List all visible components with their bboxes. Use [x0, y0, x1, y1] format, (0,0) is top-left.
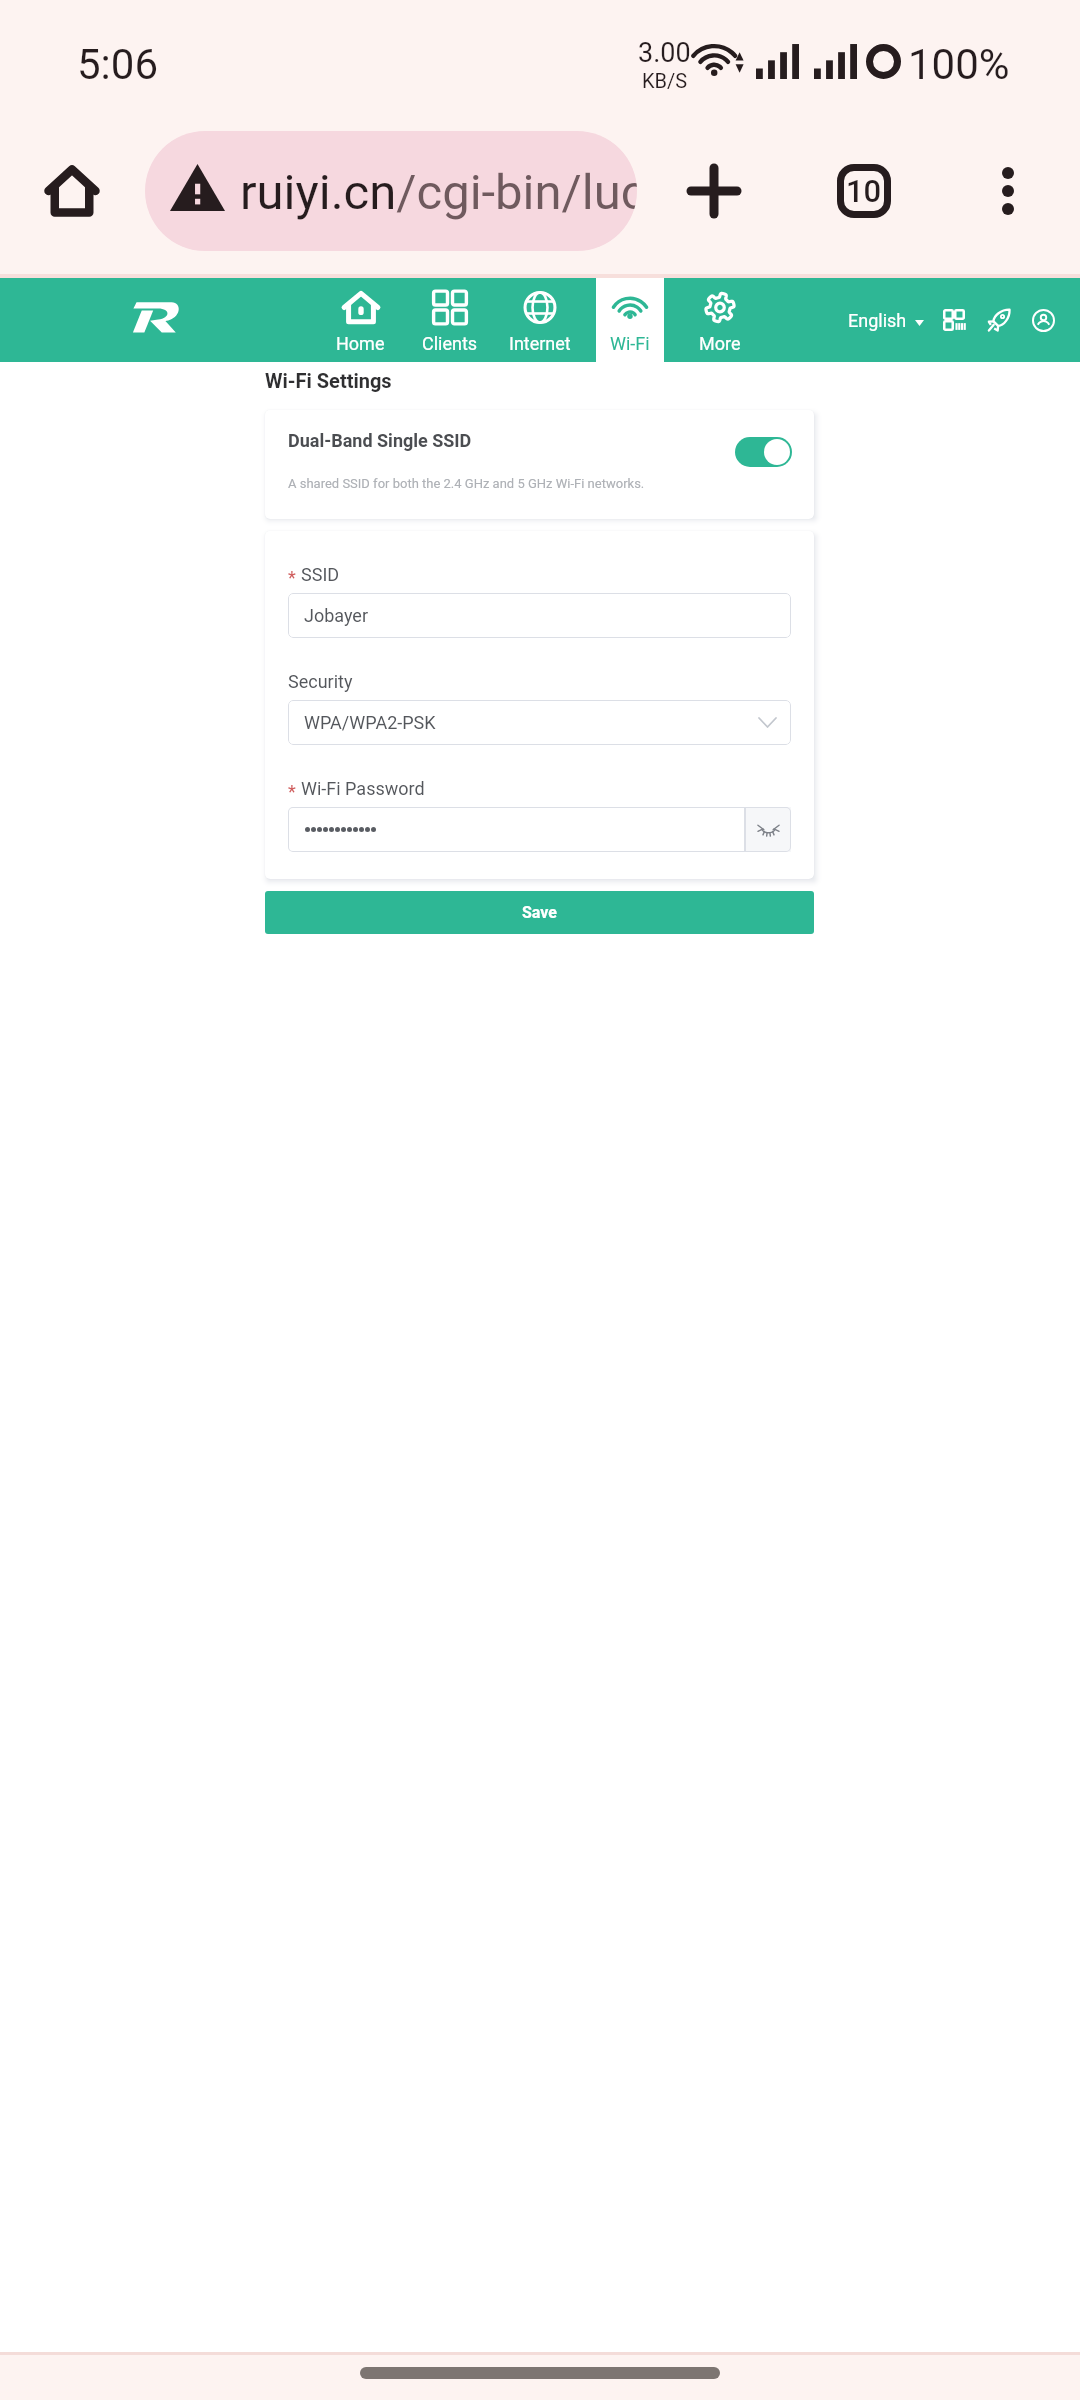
staticText: KB/S: [642, 69, 688, 92]
staticText: Wi-Fi: [610, 333, 650, 354]
staticText: Home: [336, 333, 385, 354]
button[interactable]: English: [842, 302, 930, 339]
button[interactable]: Account: [1019, 296, 1067, 344]
staticText: Internet: [509, 333, 571, 354]
staticText: *: [288, 781, 296, 802]
staticText: English: [848, 310, 907, 331]
staticText: WPA/WPA2-PSK: [304, 712, 436, 733]
button[interactable]: ruiyi.cn/cgi-bin/luci: [145, 131, 637, 251]
staticText: A shared SSID for both the 2.4 GHz and 5…: [288, 476, 645, 491]
button[interactable]: More: [675, 278, 765, 362]
button[interactable]: [288, 807, 745, 852]
button[interactable]: Jobayer: [288, 593, 791, 638]
staticText: Wi-Fi Password: [301, 778, 425, 799]
button[interactable]: QR code: [930, 296, 978, 344]
staticText: *: [288, 567, 296, 588]
staticText: 100%: [908, 40, 1010, 89]
button[interactable]: Speed test: [975, 296, 1023, 344]
staticText: Clients: [422, 333, 478, 354]
button[interactable]: Home: [315, 278, 405, 362]
staticText: Save: [522, 903, 557, 922]
staticText: Jobayer: [304, 605, 369, 626]
staticText: Dual-Band Single SSID: [288, 430, 472, 451]
staticText: 3.00: [638, 37, 691, 69]
button[interactable]: Tabs: [819, 146, 909, 236]
staticText: Wi-Fi Settings: [265, 369, 392, 392]
staticText: 5:06: [77, 40, 158, 89]
button[interactable]: Clients: [405, 278, 495, 362]
button[interactable]: Internet: [495, 278, 585, 362]
staticText: 10: [846, 173, 882, 209]
staticText: SSID: [301, 564, 340, 585]
button[interactable]: WPA/WPA2-PSK: [288, 700, 791, 745]
button[interactable]: Save: [265, 891, 814, 934]
button[interactable]: Home: [27, 146, 117, 236]
staticText: ruiyi.cn/cgi-bin/luci: [240, 164, 637, 221]
button[interactable]: Wi-Fi: [585, 278, 675, 362]
button[interactable]: Show password: [745, 807, 791, 852]
staticText: Security: [288, 671, 353, 692]
button[interactable]: Dual-Band Single SSID toggle: [735, 437, 792, 467]
staticText: More: [699, 333, 741, 354]
button[interactable]: More options: [963, 146, 1053, 236]
button[interactable]: New tab: [669, 146, 759, 236]
